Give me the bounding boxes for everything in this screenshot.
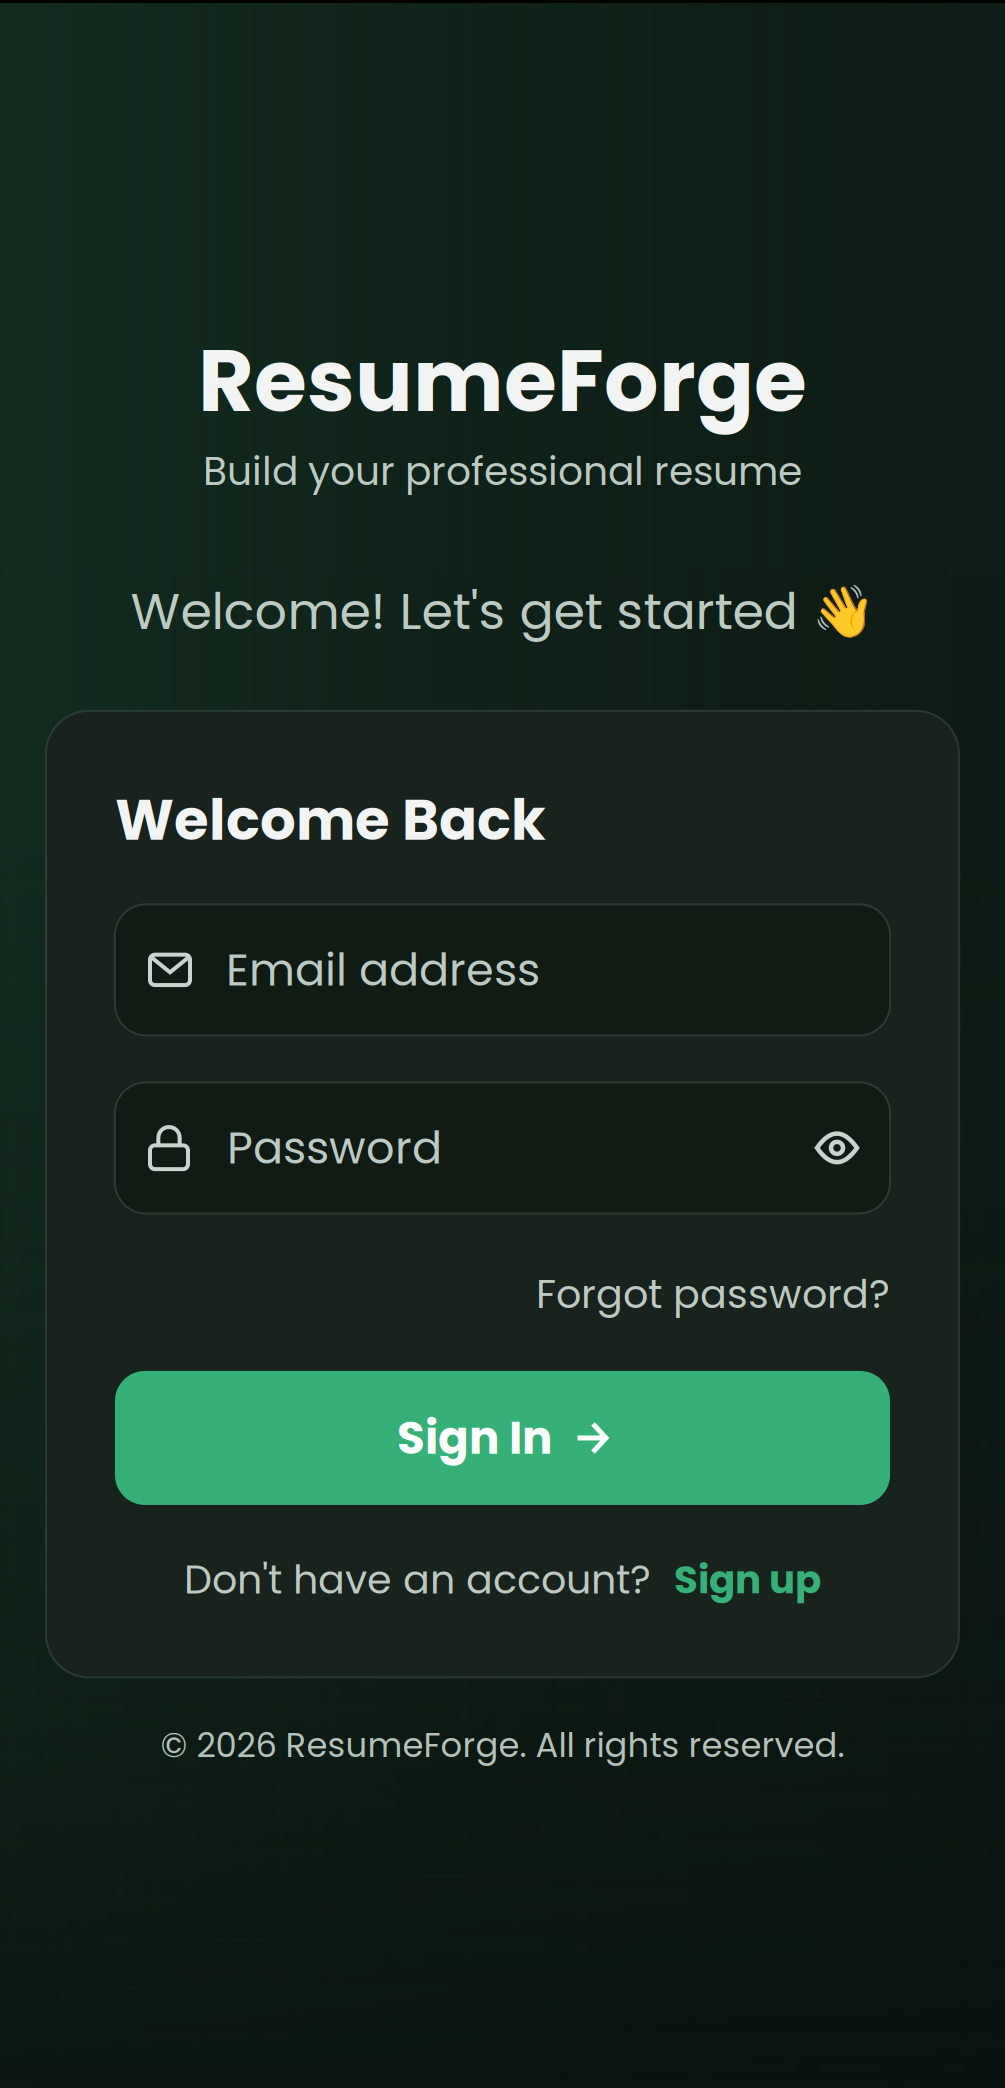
staticText: Welcome! Let's get started 👋 bbox=[130, 576, 874, 647]
button[interactable]: Sign up bbox=[674, 1552, 821, 1607]
staticText: Email address bbox=[226, 939, 540, 1001]
staticText: Welcome Back bbox=[115, 781, 546, 859]
button[interactable]: Show password bbox=[810, 1121, 864, 1175]
staticText: Forgot password? bbox=[536, 1266, 890, 1322]
staticText: ResumeForge bbox=[198, 321, 807, 441]
button[interactable]: Forgot password? bbox=[536, 1266, 890, 1322]
staticText: Password bbox=[227, 1117, 442, 1179]
staticText: Sign up bbox=[674, 1552, 821, 1607]
button[interactable]: Sign In bbox=[115, 1371, 890, 1505]
staticText: Don't have an account? bbox=[184, 1552, 651, 1607]
staticText: Build your professional resume bbox=[203, 444, 802, 499]
staticText: © 2026 ResumeForge. All rights reserved. bbox=[160, 1721, 844, 1769]
staticText: Sign In bbox=[397, 1406, 552, 1470]
